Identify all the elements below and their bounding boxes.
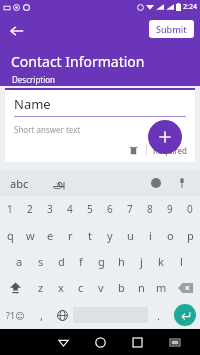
staticText: 5 xyxy=(87,202,93,216)
staticText: Name xyxy=(14,95,51,113)
staticText: e xyxy=(47,228,54,243)
staticText: 0 xyxy=(187,202,193,216)
button[interactable]: 2 xyxy=(20,196,40,222)
staticText: o xyxy=(167,228,174,243)
button[interactable]: Shift xyxy=(0,274,30,301)
button[interactable]: e xyxy=(40,222,60,248)
staticText: 8 xyxy=(147,202,153,216)
button[interactable]: அ xyxy=(52,177,65,189)
staticText: Required xyxy=(153,145,187,156)
button[interactable]: Enter xyxy=(174,304,196,326)
button[interactable]: i xyxy=(140,222,160,248)
button[interactable]: y xyxy=(100,222,120,248)
staticText: j xyxy=(140,254,143,269)
staticText: Submit xyxy=(156,23,187,35)
button[interactable]: c xyxy=(71,274,91,301)
staticText: h xyxy=(118,254,125,269)
staticText: v xyxy=(98,280,104,295)
staticText: d xyxy=(58,254,65,269)
button[interactable]: Back xyxy=(45,329,82,355)
staticText: 1 xyxy=(7,202,13,216)
button[interactable]: l xyxy=(171,248,191,274)
button[interactable]: Recent apps xyxy=(119,329,156,355)
staticText: abc xyxy=(10,176,29,191)
button[interactable]: n xyxy=(131,274,151,301)
staticText: 7 xyxy=(127,202,133,216)
button[interactable]: r xyxy=(60,222,80,248)
staticText: r xyxy=(68,228,73,243)
button[interactable]: h xyxy=(111,248,131,274)
button[interactable]: 8 xyxy=(140,196,160,222)
staticText: Contact Information xyxy=(11,52,145,71)
staticText: f xyxy=(79,254,83,269)
staticText: 2 xyxy=(27,202,33,216)
button[interactable]: abc xyxy=(10,176,29,191)
button[interactable]: 7 xyxy=(120,196,140,222)
button[interactable]: k xyxy=(151,248,171,274)
button[interactable]: g xyxy=(91,248,111,274)
button[interactable]: Change language xyxy=(52,301,73,329)
button[interactable]: d xyxy=(51,248,71,274)
button[interactable]: f xyxy=(71,248,91,274)
button[interactable]: q xyxy=(0,222,20,248)
staticText: ?1☺ xyxy=(6,309,25,321)
staticText: , xyxy=(40,308,43,323)
staticText: 4 xyxy=(67,202,73,216)
staticText: l xyxy=(180,254,183,269)
staticText: u xyxy=(127,228,134,243)
button[interactable]: b xyxy=(111,274,131,301)
button[interactable]: 9 xyxy=(160,196,180,222)
button[interactable]: s xyxy=(30,248,51,274)
staticText: Description xyxy=(12,74,56,85)
button[interactable]: 1 xyxy=(0,196,20,222)
button[interactable]: o xyxy=(160,222,180,248)
button[interactable]: 3 xyxy=(40,196,60,222)
button[interactable]: Help xyxy=(148,175,164,191)
button[interactable]: j xyxy=(131,248,151,274)
button[interactable]: u xyxy=(120,222,140,248)
button[interactable]: Submit xyxy=(149,20,194,38)
button[interactable]: Home xyxy=(82,329,119,355)
staticText: s xyxy=(38,254,44,269)
button[interactable]: a xyxy=(9,248,30,274)
button[interactable]: p xyxy=(180,222,200,248)
staticText: n xyxy=(138,280,145,295)
button[interactable]: x xyxy=(51,274,71,301)
button[interactable]: Hide keyboard xyxy=(156,329,193,355)
button[interactable]: , xyxy=(31,301,52,329)
staticText: k xyxy=(158,254,164,269)
staticText: y xyxy=(107,228,113,243)
button[interactable]: ?1☺ xyxy=(0,301,31,329)
button[interactable]: w xyxy=(20,222,40,248)
button[interactable]: Name xyxy=(5,88,195,162)
button[interactable]: Add question xyxy=(148,120,182,154)
button[interactable]: 6 xyxy=(100,196,120,222)
button[interactable]: z xyxy=(30,274,51,301)
button[interactable]: Back xyxy=(4,18,30,44)
staticText: x xyxy=(58,280,64,295)
staticText: p xyxy=(187,228,194,243)
button[interactable]: . xyxy=(148,301,169,329)
staticText: m xyxy=(156,280,167,295)
button[interactable]: 4 xyxy=(60,196,80,222)
staticText: z xyxy=(38,280,44,295)
button[interactable]: 0 xyxy=(180,196,200,222)
button[interactable]: 5 xyxy=(80,196,100,222)
staticText: a xyxy=(16,254,23,269)
button[interactable]: m xyxy=(151,274,171,301)
staticText: w xyxy=(26,228,35,243)
staticText: t xyxy=(88,228,92,243)
button[interactable]: v xyxy=(91,274,111,301)
button[interactable]: Delete xyxy=(125,142,141,158)
staticText: i xyxy=(149,228,152,243)
button[interactable]: Voice input xyxy=(174,175,190,191)
staticText: அ xyxy=(52,177,65,189)
button[interactable]: Required xyxy=(153,145,187,156)
staticText: 3 xyxy=(47,202,53,216)
button[interactable]: Backspace xyxy=(171,274,200,301)
staticText: 6 xyxy=(107,202,113,216)
staticText: Short answer text xyxy=(14,124,81,135)
button[interactable]: t xyxy=(80,222,100,248)
staticText: 2:24 xyxy=(183,2,197,12)
